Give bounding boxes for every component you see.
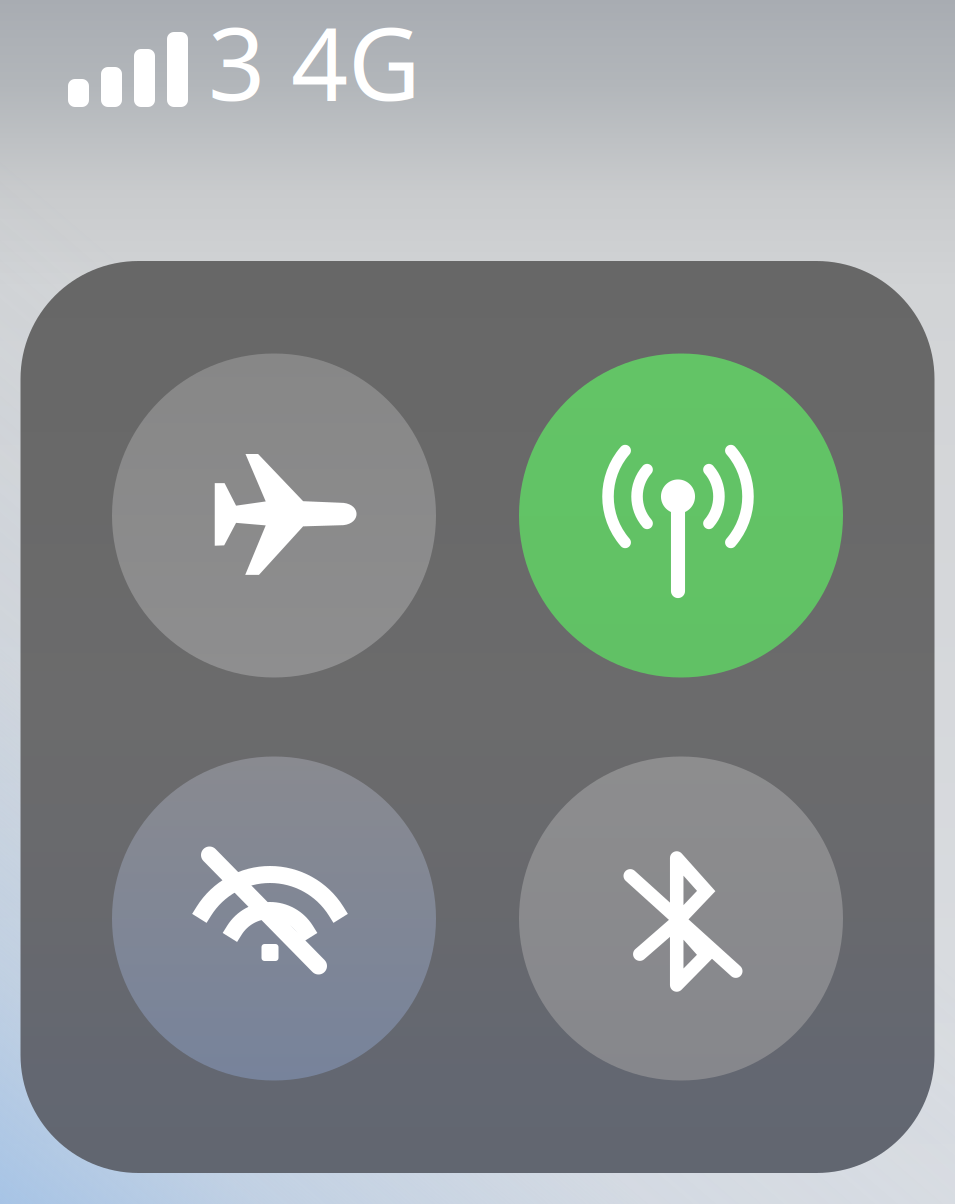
- button[interactable]: Wi-Fi: [112, 756, 436, 1080]
- button[interactable]: Airplane Mode: [112, 353, 436, 677]
- button[interactable]: Cellular Data: [519, 353, 843, 677]
- staticText: 3 4G: [208, 0, 421, 128]
- button[interactable]: Bluetooth: [519, 756, 843, 1080]
